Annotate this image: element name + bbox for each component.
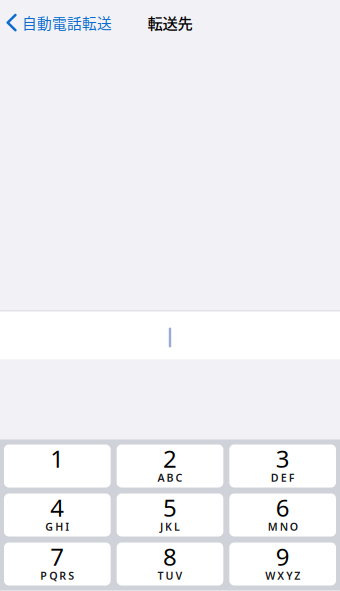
staticText: T U V (157, 568, 182, 583)
button[interactable]: 5 (117, 493, 223, 536)
button[interactable]: 自動電話転送 (0, 0, 120, 44)
staticText: D E F (271, 470, 295, 485)
staticText: 9 (276, 541, 290, 572)
staticText: 7 (50, 541, 64, 572)
staticText: 転送先 (147, 11, 192, 34)
staticText: 4 (50, 492, 64, 523)
staticText: 2 (163, 443, 177, 474)
staticText: G H I (45, 519, 69, 534)
button[interactable]: 8 (117, 542, 223, 585)
staticText: P Q R S (40, 568, 74, 583)
staticText: 5 (163, 492, 177, 523)
button[interactable]: 転送先の電話番号 (0, 311, 340, 359)
button[interactable]: 4 (4, 493, 111, 536)
staticText: 3 (276, 443, 290, 474)
staticText: 8 (163, 541, 177, 572)
staticText: W X Y Z (265, 568, 300, 583)
button[interactable]: 9 (229, 542, 336, 585)
button[interactable]: 2 (117, 444, 223, 487)
button[interactable]: 1 (4, 444, 111, 487)
staticText: 自動電話転送 (22, 12, 112, 33)
button[interactable]: 6 (229, 493, 336, 536)
button[interactable]: 3 (229, 444, 336, 487)
button[interactable]: 7 (4, 542, 111, 585)
staticText: J K L (160, 519, 180, 534)
staticText: A B C (157, 470, 182, 485)
staticText: 6 (276, 492, 290, 523)
staticText: 1 (50, 443, 64, 474)
staticText: M N O (268, 519, 298, 534)
